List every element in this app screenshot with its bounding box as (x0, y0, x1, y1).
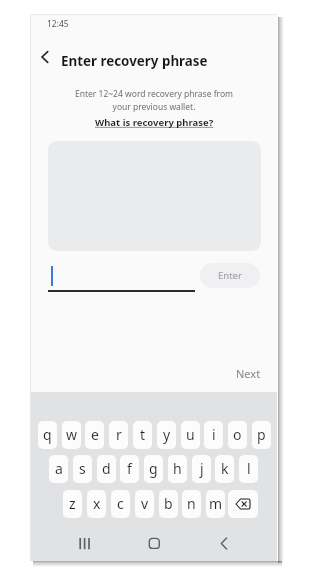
button[interactable]: r (109, 421, 128, 449)
button[interactable]: a (49, 455, 68, 483)
button[interactable]: o (228, 421, 247, 449)
button[interactable]: b (159, 490, 178, 518)
button[interactable]: u (181, 421, 200, 449)
staticText: b (164, 494, 173, 513)
button[interactable]: What is recovery phrase? (31, 116, 277, 129)
button[interactable]: j (192, 455, 211, 483)
button[interactable] (75, 533, 94, 554)
staticText: t (140, 425, 146, 444)
staticText: x (93, 494, 101, 513)
button[interactable]: f (120, 455, 139, 483)
button[interactable]: z (63, 490, 82, 518)
button[interactable]: g (144, 455, 163, 483)
staticText: u (186, 425, 195, 444)
staticText: w (66, 425, 78, 444)
button[interactable]: Next (31, 366, 277, 381)
staticText: e (91, 425, 99, 444)
staticText: r (116, 425, 122, 444)
staticText: Enter 12~24 word recovery phrase from yo… (31, 88, 277, 112)
staticText: y (163, 425, 171, 444)
staticText: Enter recovery phrase (61, 52, 208, 70)
staticText: h (173, 459, 182, 478)
staticText: c (117, 494, 124, 513)
button[interactable]: l (239, 455, 258, 483)
button[interactable]: x (87, 490, 106, 518)
button[interactable] (228, 490, 258, 518)
staticText: k (221, 459, 229, 478)
staticText: p (257, 425, 266, 444)
staticText: What is recovery phrase? (95, 116, 214, 129)
button[interactable]: i (204, 421, 223, 449)
button[interactable]: d (97, 455, 116, 483)
button[interactable]: Enter (200, 263, 260, 288)
button[interactable]: m (206, 490, 225, 518)
button[interactable] (214, 533, 234, 554)
staticText: v (141, 494, 149, 513)
staticText: Next (236, 366, 261, 381)
button[interactable]: k (215, 455, 234, 483)
button[interactable] (35, 47, 55, 67)
button[interactable] (144, 533, 165, 554)
button[interactable]: t (133, 421, 152, 449)
button[interactable]: q (38, 421, 57, 449)
staticText: Enter (218, 269, 242, 282)
staticText: i (212, 425, 216, 444)
staticText: q (43, 425, 52, 444)
staticText: o (233, 425, 242, 444)
staticText: n (187, 494, 196, 513)
staticText: d (102, 459, 111, 478)
staticText: j (200, 459, 204, 478)
staticText: l (247, 459, 251, 478)
button[interactable]: c (111, 490, 130, 518)
button[interactable]: w (62, 421, 81, 449)
button[interactable]: h (168, 455, 187, 483)
staticText: g (149, 459, 158, 478)
button[interactable]: n (182, 490, 201, 518)
staticText: f (127, 459, 132, 478)
button[interactable]: e (85, 421, 104, 449)
button[interactable]: v (135, 490, 154, 518)
staticText: m (209, 494, 223, 513)
button[interactable]: y (157, 421, 176, 449)
button[interactable]: s (73, 455, 92, 483)
button[interactable]: p (252, 421, 271, 449)
staticText: 12:45 (47, 18, 69, 30)
staticText: a (55, 459, 63, 478)
staticText: s (79, 459, 86, 478)
staticText: z (69, 494, 76, 513)
